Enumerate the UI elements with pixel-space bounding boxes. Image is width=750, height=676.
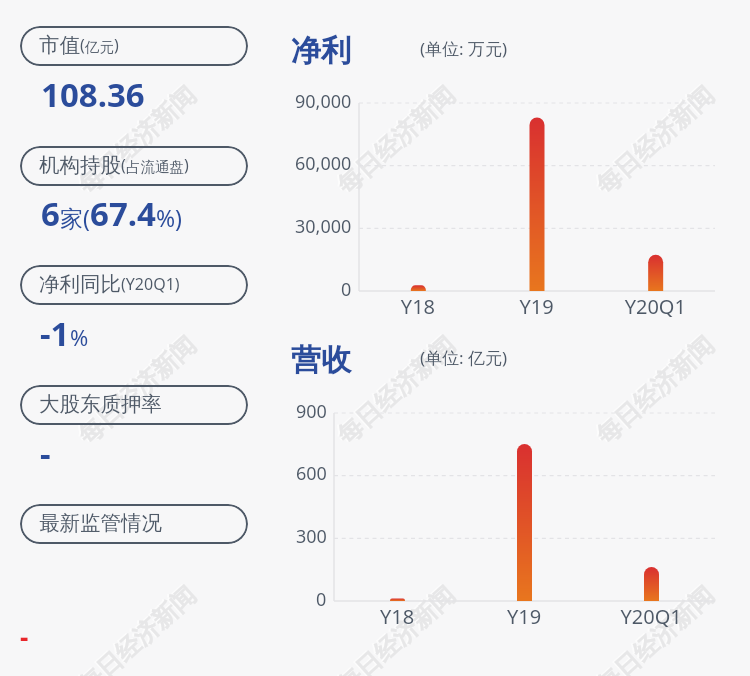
button[interactable]: 机构持股(占流通盘)	[20, 146, 248, 186]
button[interactable]: 净利同比(Y20Q1)	[20, 265, 248, 305]
button[interactable]: 最新监管情况	[20, 504, 248, 544]
button[interactable]: 大股东质押率	[20, 385, 248, 425]
button[interactable]: 市值(亿元)	[20, 26, 248, 66]
